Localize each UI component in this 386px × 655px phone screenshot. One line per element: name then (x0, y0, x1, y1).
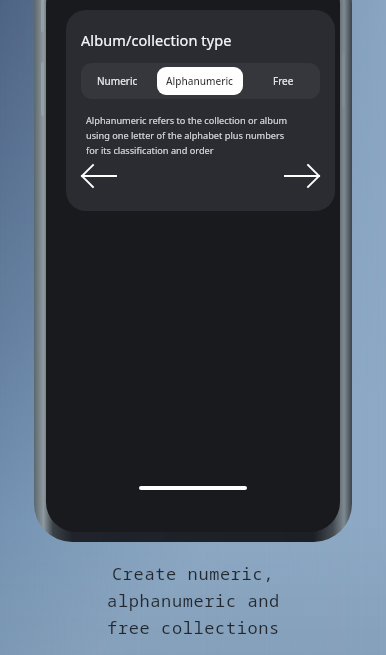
button[interactable]: Free (249, 67, 317, 95)
staticText: Alphanumeric (166, 74, 234, 88)
staticText: Free (273, 74, 294, 88)
staticText: using one letter of the alphabet plus nu… (86, 129, 285, 142)
staticText: Create numeric, (112, 562, 274, 585)
staticText: for its classification and order (86, 144, 214, 157)
staticText: Numeric (97, 74, 138, 88)
staticText: free collections (107, 616, 280, 639)
button[interactable]: Alphanumeric (157, 67, 243, 95)
button[interactable]: Numeric (84, 67, 151, 95)
button[interactable]: Next (279, 159, 325, 193)
staticText: Alphanumeric refers to the collection or… (86, 114, 288, 127)
staticText: Album/collection type (81, 30, 232, 50)
staticText: alphanumeric and (107, 589, 280, 612)
button[interactable]: Back (76, 159, 122, 193)
